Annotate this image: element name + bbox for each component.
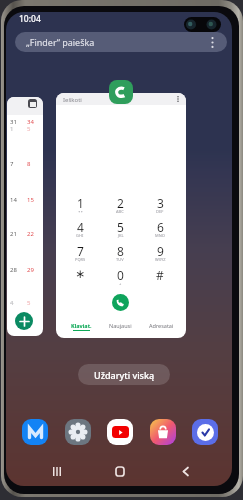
staticText: 7 bbox=[10, 160, 14, 168]
button[interactable]: 7 bbox=[62, 243, 98, 265]
staticText: JKL bbox=[118, 233, 124, 238]
staticText: 2 bbox=[117, 195, 124, 211]
staticText: 31 bbox=[10, 118, 17, 126]
button[interactable]: Back bbox=[175, 461, 195, 481]
staticText: 5 bbox=[27, 299, 31, 307]
button[interactable]: Call bbox=[112, 294, 129, 311]
button[interactable]: 6 bbox=[142, 219, 178, 241]
button[interactable]: YouTube bbox=[107, 419, 133, 445]
staticText: ABC bbox=[116, 209, 124, 214]
staticText: 14 bbox=[10, 196, 17, 204]
staticText: 4 bbox=[77, 219, 84, 235]
staticText: 34 bbox=[27, 118, 34, 126]
staticText: MNO bbox=[155, 233, 165, 238]
staticText: 9 bbox=[157, 243, 164, 259]
staticText: 5 bbox=[27, 125, 31, 133]
button[interactable]: Adresatai bbox=[144, 320, 179, 334]
staticText: 8 bbox=[27, 160, 31, 168]
staticText: PQRS bbox=[75, 257, 86, 262]
staticText: 6 bbox=[157, 219, 164, 235]
staticText: WXYZ bbox=[155, 257, 166, 262]
staticText: 8 bbox=[117, 243, 124, 259]
staticText: DEF bbox=[156, 209, 164, 214]
button[interactable]: 2 bbox=[102, 195, 138, 217]
staticText: GHI bbox=[76, 233, 84, 238]
button[interactable]: Phone app bbox=[109, 80, 133, 104]
button[interactable]: # bbox=[142, 267, 178, 289]
button[interactable]: Klaviat. bbox=[64, 320, 99, 334]
button[interactable]: Settings bbox=[65, 419, 91, 445]
button[interactable]: 0 bbox=[102, 267, 138, 289]
button[interactable]: Galaxy Store bbox=[150, 419, 176, 445]
staticText: Ieškoti bbox=[63, 96, 82, 104]
staticText: 10:04 bbox=[19, 13, 41, 25]
button[interactable]: Ieškoti bbox=[56, 93, 186, 338]
button[interactable]: Naujausi bbox=[103, 320, 138, 334]
staticText: „Finder“ paieška bbox=[26, 36, 95, 48]
staticText: TUV bbox=[116, 257, 124, 262]
button[interactable]: 9 bbox=[142, 243, 178, 265]
staticText: Naujausi bbox=[109, 322, 132, 329]
staticText: ∗ bbox=[75, 267, 86, 281]
staticText: ∙∙ bbox=[78, 209, 84, 214]
staticText: 3 bbox=[157, 195, 164, 211]
button[interactable]: 5 bbox=[102, 219, 138, 241]
button[interactable]: Messages bbox=[22, 419, 48, 445]
button[interactable]: 1 bbox=[62, 195, 98, 217]
button[interactable]: 31 bbox=[7, 97, 43, 336]
button[interactable]: ∗ bbox=[62, 267, 98, 289]
button[interactable]: 4 bbox=[62, 219, 98, 241]
staticText: 29 bbox=[27, 266, 34, 274]
staticText: 1 bbox=[10, 125, 14, 133]
staticText: 5 bbox=[117, 219, 124, 235]
button[interactable]: Home bbox=[110, 461, 130, 481]
staticText: Klaviat. bbox=[71, 322, 92, 329]
staticText: 0 bbox=[117, 267, 124, 283]
button[interactable]: Recents bbox=[47, 461, 67, 481]
staticText: Uždaryti viską bbox=[94, 369, 155, 381]
staticText: 21 bbox=[10, 230, 17, 238]
button[interactable]: Add event bbox=[15, 312, 33, 330]
staticText: 1 bbox=[77, 195, 84, 211]
button[interactable]: Uždaryti viską bbox=[78, 364, 170, 385]
staticText: 15 bbox=[27, 196, 34, 204]
staticText: + bbox=[119, 281, 122, 286]
button[interactable]: „Finder“ paieška bbox=[15, 32, 227, 52]
staticText: 28 bbox=[10, 266, 17, 274]
button[interactable]: Clock bbox=[192, 419, 218, 445]
staticText: 22 bbox=[27, 230, 34, 238]
button[interactable]: 3 bbox=[142, 195, 178, 217]
staticText: # bbox=[156, 267, 164, 283]
button[interactable]: 8 bbox=[102, 243, 138, 265]
staticText: Adresatai bbox=[149, 322, 174, 329]
staticText: 4 bbox=[10, 299, 14, 307]
staticText: 7 bbox=[77, 243, 84, 259]
